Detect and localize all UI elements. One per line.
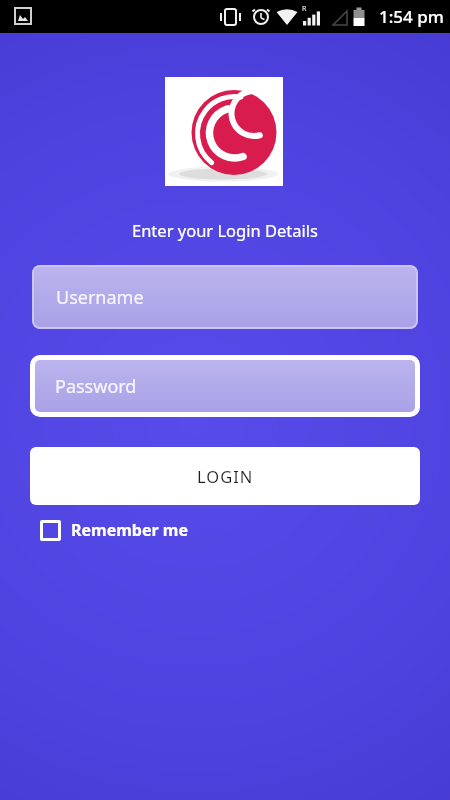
staticText: Remember me: [71, 519, 188, 541]
button[interactable]: Password: [35, 360, 415, 412]
staticText: R: [302, 4, 307, 14]
staticText: Password: [55, 374, 137, 399]
staticText: LOGIN: [197, 465, 254, 487]
button[interactable]: LOGIN: [30, 447, 420, 505]
button[interactable]: Remember me: [40, 519, 188, 541]
staticText: 1:54 pm: [379, 5, 444, 28]
staticText: Username: [56, 285, 144, 310]
button[interactable]: Username: [32, 265, 418, 329]
staticText: Enter your Login Details: [132, 219, 318, 241]
